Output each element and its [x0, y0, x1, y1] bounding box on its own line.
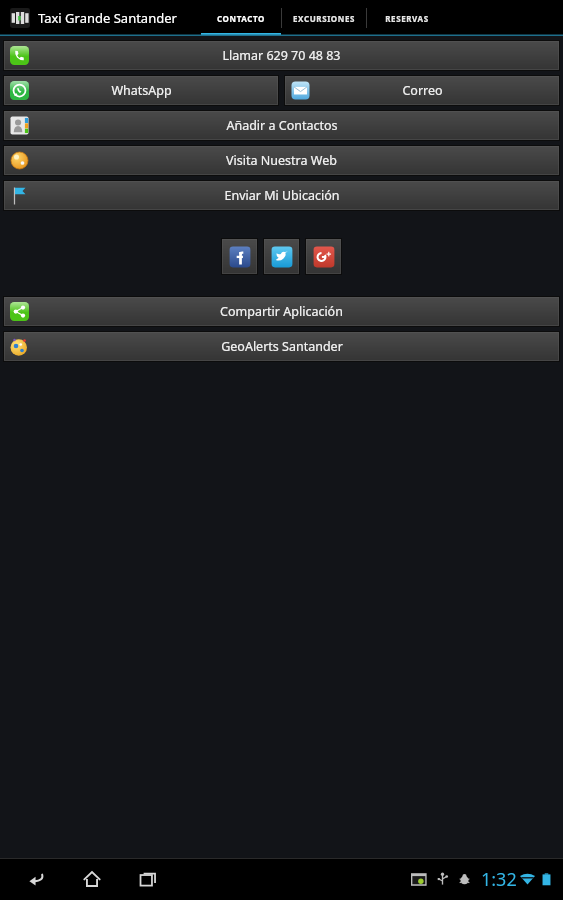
button[interactable]: Facebook: [222, 239, 257, 274]
staticText: Taxi Grande Santander: [38, 9, 177, 27]
button[interactable]: Status: [411, 858, 555, 900]
staticText: Enviar Mi Ubicación: [224, 187, 340, 204]
staticText: CONTACTO: [217, 13, 265, 24]
staticText: 1:32: [481, 867, 517, 892]
other: App icon: [10, 8, 30, 28]
staticText: Añadir a Contactos: [226, 117, 338, 134]
staticText: RESERVAS: [385, 13, 429, 24]
button[interactable]: Correo: [285, 76, 559, 105]
button[interactable]: WhatsApp: [4, 76, 278, 105]
staticText: Visita Nuestra Web: [226, 152, 337, 169]
button[interactable]: Home: [70, 858, 114, 900]
button[interactable]: Google Plus: [306, 239, 341, 274]
staticText: Compartir Aplicación: [220, 303, 343, 320]
button[interactable]: Compartir Aplicación: [4, 297, 559, 326]
staticText: GeoAlerts Santander: [221, 338, 343, 355]
button[interactable]: Llamar 629 70 48 83: [4, 41, 559, 70]
button[interactable]: Twitter: [264, 239, 299, 274]
staticText: WhatsApp: [111, 82, 172, 99]
button[interactable]: RESERVAS: [367, 0, 447, 36]
button[interactable]: CONTACTO: [201, 0, 281, 36]
button[interactable]: Visita Nuestra Web: [4, 146, 559, 175]
button[interactable]: Back: [14, 858, 58, 900]
staticText: Llamar 629 70 48 83: [222, 47, 341, 64]
button[interactable]: Añadir a Contactos: [4, 111, 559, 140]
staticText: EXCURSIONES: [293, 13, 355, 24]
staticText: Correo: [402, 82, 443, 99]
button[interactable]: GeoAlerts Santander: [4, 332, 559, 361]
button[interactable]: EXCURSIONES: [282, 0, 366, 36]
button[interactable]: Recent apps: [126, 858, 170, 900]
button[interactable]: Enviar Mi Ubicación: [4, 181, 559, 210]
